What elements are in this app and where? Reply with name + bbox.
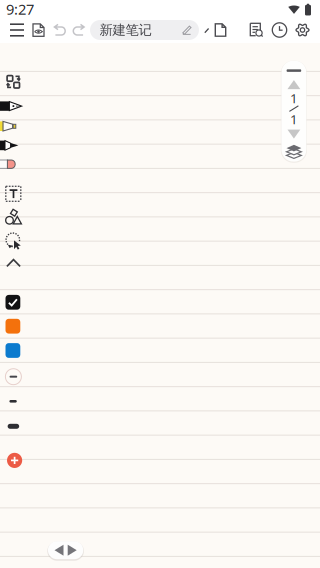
- button[interactable]: Settings: [289, 17, 315, 43]
- button[interactable]: Undo: [48, 17, 72, 43]
- button[interactable]: New page: [208, 17, 232, 43]
- button[interactable]: Outline: [243, 17, 269, 43]
- button[interactable]: Thin stroke: [0, 391, 26, 411]
- button[interactable]: Black: [0, 291, 26, 313]
- staticText: 9:27: [6, 0, 34, 19]
- button[interactable]: Collapse toolbar: [0, 253, 26, 273]
- button[interactable]: Shapes: [0, 206, 26, 228]
- button[interactable]: Previous page: [283, 78, 305, 92]
- button[interactable]: Orange: [0, 315, 26, 337]
- button[interactable]: Thick stroke: [0, 416, 26, 436]
- staticText: 新建笔记: [99, 22, 151, 38]
- button[interactable]: Highlighter: [0, 116, 25, 136]
- button[interactable]: Stroke size: [0, 366, 26, 388]
- button[interactable]: Eraser: [0, 154, 25, 174]
- button[interactable]: Pen: [0, 96, 25, 116]
- button[interactable]: Layers: [283, 143, 305, 161]
- staticText: 1: [290, 110, 298, 128]
- button[interactable]: 新建笔记: [90, 20, 199, 40]
- button[interactable]: Page navigator: [48, 541, 83, 559]
- button[interactable]: Stylus: [200, 19, 214, 41]
- button[interactable]: Blue: [0, 339, 26, 361]
- button[interactable]: Text: [0, 183, 26, 205]
- button[interactable]: Redo: [66, 17, 90, 43]
- button[interactable]: Next page: [283, 127, 305, 141]
- button[interactable]: History: [266, 17, 292, 43]
- button[interactable]: Lasso select: [0, 230, 26, 252]
- button[interactable]: Add colour: [2, 449, 28, 471]
- staticText: 1: [290, 89, 298, 107]
- button[interactable]: Preview: [26, 17, 50, 43]
- button[interactable]: Menu: [3, 17, 31, 43]
- button[interactable]: Transform: [0, 71, 27, 93]
- button[interactable]: Pencil: [0, 135, 25, 155]
